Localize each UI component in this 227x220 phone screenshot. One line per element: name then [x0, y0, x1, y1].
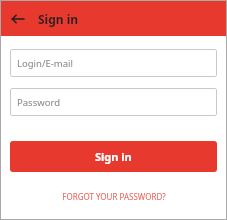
button[interactable]: Login/E-mail [10, 49, 217, 77]
staticText: Sign in [95, 149, 132, 164]
button[interactable]: Sign in [10, 141, 217, 172]
button[interactable]: FORGOT YOUR PASSWORD? [10, 186, 217, 206]
button[interactable]: Back [6, 7, 30, 31]
staticText: Password [17, 96, 60, 109]
button[interactable]: Password [10, 88, 217, 116]
staticText: FORGOT YOUR PASSWORD? [62, 191, 166, 202]
staticText: Sign in [38, 11, 79, 27]
staticText: Login/E-mail [17, 57, 73, 70]
